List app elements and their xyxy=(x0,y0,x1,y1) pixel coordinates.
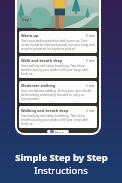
staticText: Instructions xyxy=(34,164,88,177)
staticText: Walk and breath deep xyxy=(21,58,86,63)
staticText: Simple Step by Step xyxy=(15,151,108,164)
staticText: 5 min xyxy=(86,59,95,63)
staticText: Walking and breath deep xyxy=(21,108,86,113)
staticText: Warm-up xyxy=(21,33,86,38)
button[interactable]: Warm-up xyxy=(19,31,97,53)
staticText: Start your walking workout with warm up.… xyxy=(21,39,95,51)
staticText: Start walking with deep breathing. Take … xyxy=(21,64,95,76)
staticText: Day 1 xyxy=(22,17,32,22)
staticText: Start walking with deep breathing. Take … xyxy=(21,114,95,126)
staticText: 5 min xyxy=(86,34,95,38)
staticText: Music xyxy=(55,130,65,133)
staticText: Give it moderate walking. At this pace, … xyxy=(21,89,95,101)
staticText: 5 min xyxy=(86,84,95,88)
staticText: 5 min xyxy=(86,109,95,113)
button[interactable]: Music xyxy=(47,130,69,133)
button[interactable]: Moderate walking xyxy=(19,81,97,103)
button[interactable]: Walk and breath deep xyxy=(19,56,97,78)
button[interactable]: Walking and breath deep xyxy=(19,106,97,128)
staticText: Moderate walking xyxy=(21,83,86,88)
